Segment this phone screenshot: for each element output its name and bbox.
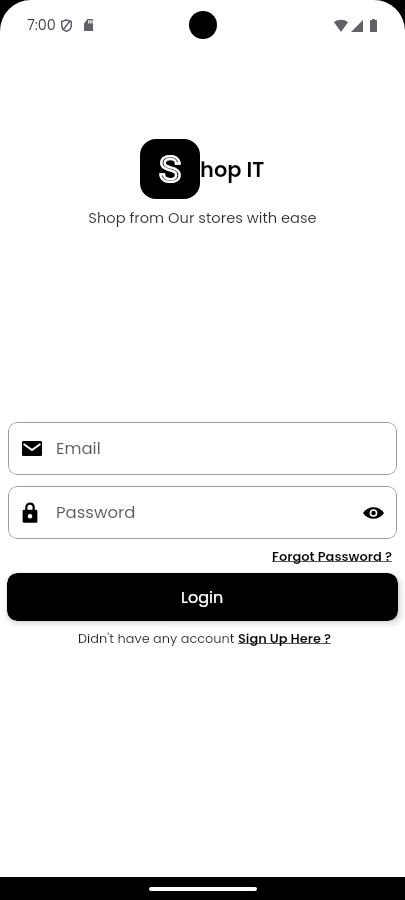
button[interactable]: Email <box>8 422 397 475</box>
staticText: Didn't have any account <box>78 629 238 647</box>
staticText: Email <box>56 437 101 460</box>
staticText: Password <box>56 501 136 524</box>
button[interactable]: Forgot Password ? <box>272 547 392 565</box>
staticText: S <box>159 148 181 191</box>
staticText: Shop from Our stores with ease <box>0 208 405 229</box>
button[interactable]: Login <box>7 573 398 621</box>
button[interactable]: Show password <box>360 500 386 526</box>
staticText: 7:00 <box>27 15 56 35</box>
staticText: hop IT <box>200 155 265 184</box>
button[interactable]: Password <box>8 486 397 539</box>
button[interactable]: Sign Up Here ? <box>238 629 331 647</box>
staticText: Login <box>181 586 224 608</box>
